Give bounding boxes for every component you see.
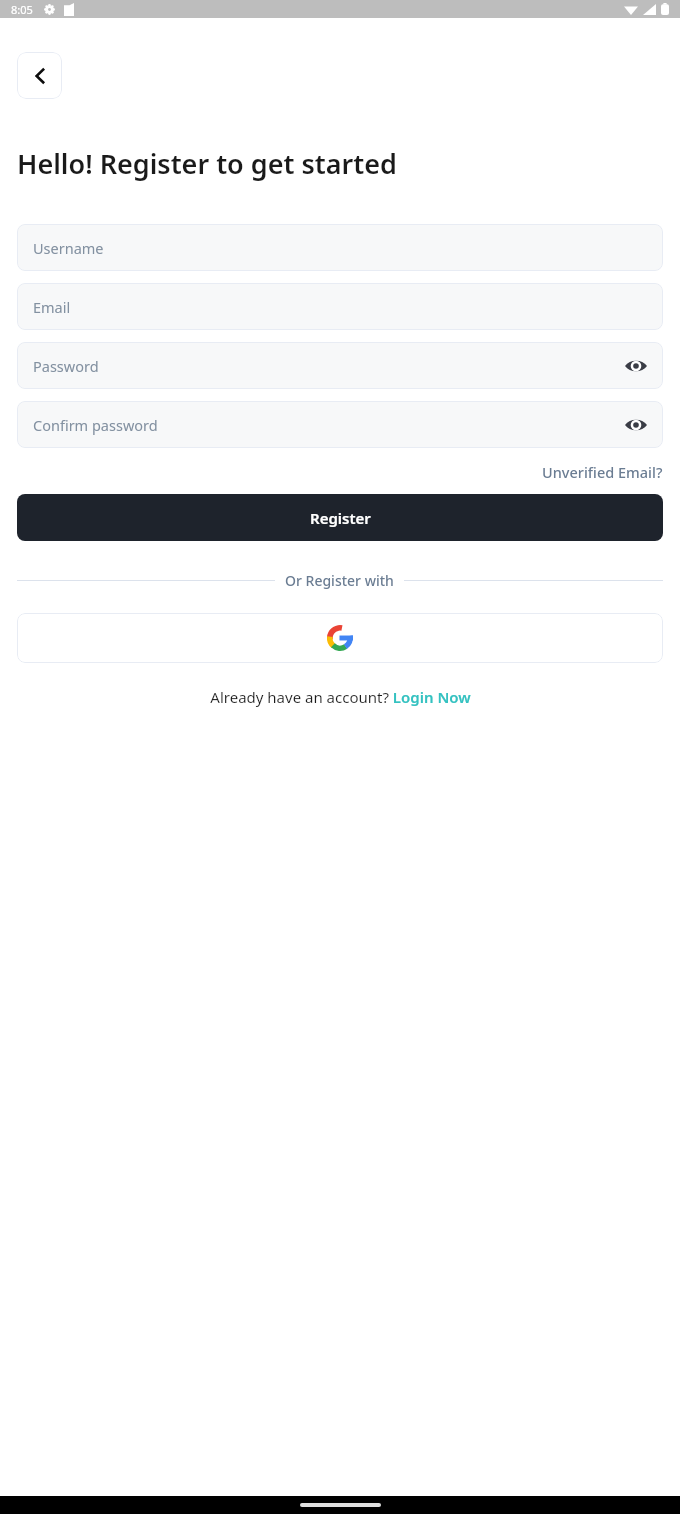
staticText: 8:05 [11, 2, 33, 17]
staticText: Already have an account? Login Now [210, 687, 471, 707]
button[interactable]: Already have an account? Login Now [210, 687, 471, 707]
staticText: Register [310, 508, 371, 528]
button[interactable]: Unverified Email? [542, 462, 663, 482]
button[interactable]: Username [17, 224, 663, 271]
button[interactable]: Register [17, 494, 663, 541]
staticText: Email [33, 297, 71, 317]
button[interactable]: Show password [623, 412, 649, 438]
button[interactable]: Password [17, 342, 663, 389]
staticText: Password [33, 356, 99, 376]
staticText: Confirm password [33, 415, 158, 435]
button[interactable]: Register with Google [17, 613, 663, 663]
staticText: Username [33, 238, 104, 258]
staticText: Hello! Register to get started [17, 145, 397, 182]
staticText: Or Register with [285, 571, 394, 590]
staticText: Unverified Email? [542, 462, 663, 482]
button[interactable]: Back [17, 52, 62, 99]
button[interactable]: Email [17, 283, 663, 330]
button[interactable]: Show password [623, 353, 649, 379]
button[interactable]: Confirm password [17, 401, 663, 448]
